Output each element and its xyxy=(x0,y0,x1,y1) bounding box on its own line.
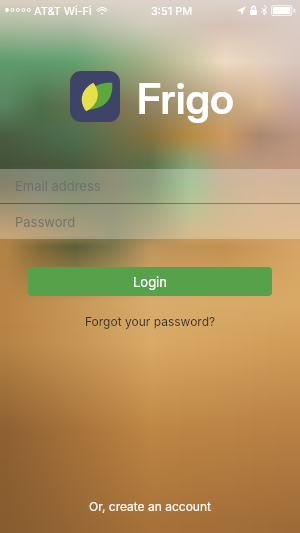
staticText: 3:51 PM xyxy=(151,4,193,17)
button[interactable]: Login xyxy=(28,267,272,296)
button[interactable]: Or, create an account xyxy=(0,498,300,514)
staticText: Forgot your password? xyxy=(85,314,216,329)
staticText: Frigo xyxy=(137,73,235,124)
button[interactable]: Email address xyxy=(0,169,300,203)
staticText: Or, create an account xyxy=(89,499,211,514)
other: Location xyxy=(237,6,246,15)
staticText: Email address xyxy=(15,178,101,194)
button[interactable]: Forgot your password? xyxy=(0,313,300,329)
button[interactable]: Password xyxy=(0,204,300,239)
staticText: Password xyxy=(15,214,76,230)
staticText: AT&T Wi-Fi xyxy=(34,4,92,17)
staticText: Login xyxy=(133,274,167,290)
